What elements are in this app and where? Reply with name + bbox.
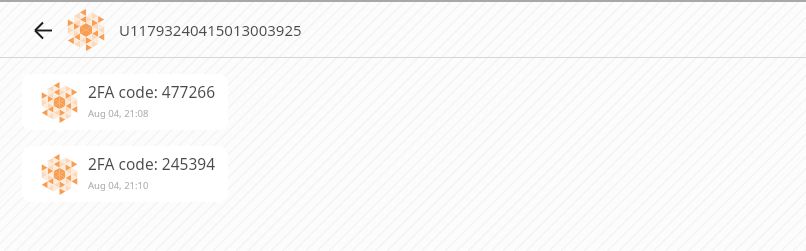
- staticText: Aug 04, 21:08: [88, 107, 149, 120]
- button[interactable]: 2FA code: 477266: [22, 74, 228, 130]
- button[interactable]: 2FA code: 245394: [22, 146, 228, 202]
- staticText: 2FA code: 245394: [88, 153, 216, 174]
- button[interactable]: Back: [21, 8, 65, 52]
- staticText: 2FA code: 477266: [88, 81, 216, 102]
- staticText: U11793240415013003925: [119, 20, 302, 40]
- staticText: Aug 04, 21:10: [88, 179, 149, 192]
